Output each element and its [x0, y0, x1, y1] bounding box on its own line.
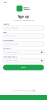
staticText: Confirm password — [4, 60, 18, 61]
button[interactable]: Log in — [31, 90, 35, 91]
staticText: HARVEST — [23, 8, 30, 10]
staticText: Log in — [31, 90, 35, 91]
button[interactable]: Sign up — [3, 65, 44, 70]
staticText: Sign up — [18, 15, 29, 18]
staticText: Confirm password — [3, 56, 17, 58]
staticText: 9:41 — [4, 2, 7, 3]
staticText: Already have an account? — [12, 90, 31, 91]
staticText: Full name — [3, 23, 9, 25]
staticText: Enter phone number — [4, 43, 19, 45]
staticText: Password — [3, 48, 11, 50]
staticText: Enter your email — [4, 35, 15, 37]
staticText: Create an account to get started — [13, 19, 34, 21]
staticText: Sign up — [21, 67, 26, 68]
staticText: Create a password — [4, 51, 18, 53]
staticText: Phone number — [3, 40, 14, 41]
staticText: GREEN — [23, 7, 28, 8]
staticText: Enter your full name — [4, 27, 17, 29]
staticText: Email — [3, 31, 6, 33]
